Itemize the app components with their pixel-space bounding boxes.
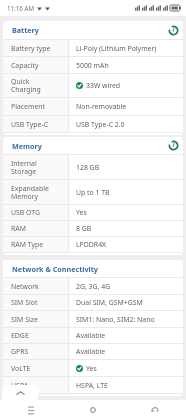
button[interactable]: SIM Size (3, 311, 183, 327)
button[interactable]: Internal Storage (3, 155, 183, 179)
button[interactable]: Capacity (3, 57, 183, 73)
button[interactable]: Expandable Memory (3, 180, 183, 204)
staticText: Non-removable (76, 102, 127, 111)
button[interactable]: Battery (3, 21, 183, 39)
staticText: SIM Slot (11, 298, 38, 307)
staticText: Battery type (11, 44, 51, 53)
button[interactable]: RAM (3, 221, 183, 236)
staticText: VoLTE (11, 364, 31, 373)
button[interactable]: Battery type (3, 40, 183, 56)
staticText: Memory (12, 141, 42, 151)
staticText: Available (76, 331, 106, 340)
button[interactable]: VoLTE (3, 360, 183, 376)
button[interactable]: HSPA (3, 377, 183, 393)
button[interactable]: Quick Charging (3, 74, 183, 97)
staticText: EDGE (11, 331, 29, 340)
button[interactable]: USB OTG (3, 205, 183, 220)
staticText: 11:16 AM (7, 4, 34, 12)
staticText: Network (11, 282, 39, 291)
button[interactable]: Network & Connectivity (3, 260, 183, 277)
staticText: SIM Size (11, 315, 38, 324)
button[interactable]: USB Type-C (3, 116, 183, 132)
staticText: USB Type-C 2.0 (76, 120, 125, 129)
staticText: HSPA (11, 381, 29, 390)
button[interactable]: Home (62, 400, 124, 420)
button[interactable]: Recents (0, 400, 62, 420)
staticText: 33W wired (86, 81, 121, 90)
button[interactable]: EDGE (3, 328, 183, 343)
button[interactable]: RAM Type (3, 237, 183, 252)
staticText: 5000 mAh (76, 61, 109, 70)
button[interactable]: SIM Slot (3, 295, 183, 310)
staticText: Yes (86, 364, 97, 373)
staticText: LPDDR4X (76, 240, 107, 249)
staticText: Quick Charging (11, 77, 41, 94)
staticText: Internal Storage (11, 159, 37, 176)
staticText: Battery (12, 25, 39, 35)
button[interactable]: Memory (3, 137, 183, 154)
staticText: GPRS (11, 347, 29, 356)
staticText: Expandable Memory (11, 184, 49, 201)
staticText: Up to 1 TB (76, 188, 110, 197)
staticText: Network & Connectivity (12, 264, 98, 274)
button[interactable]: Network (3, 278, 183, 294)
staticText: USB OTG (11, 208, 40, 217)
button[interactable]: Back (124, 400, 186, 420)
staticText: 8 GB (76, 224, 92, 233)
staticText: HSPA, LTE (76, 381, 108, 390)
staticText: Li-Poly (Lithium Polymer) (76, 44, 157, 53)
button[interactable]: Scroll to top (2, 385, 38, 400)
staticText: Dual SIM, GSM+GSM (76, 298, 143, 307)
staticText: Available (76, 347, 106, 356)
staticText: Yes (76, 208, 87, 217)
button[interactable]: Placement (3, 98, 183, 115)
staticText: Capacity (11, 61, 39, 70)
staticText: USB Type-C (11, 120, 48, 129)
staticText: Placement (11, 102, 46, 111)
staticText: RAM Type (11, 240, 44, 249)
staticText: 128 GB (76, 163, 100, 172)
staticText: RAM (11, 224, 26, 233)
button[interactable]: GPRS (3, 344, 183, 359)
staticText: SIM1: Nano, SIM2: Nano (76, 315, 155, 324)
staticText: 2G, 3G, 4G (76, 282, 111, 291)
